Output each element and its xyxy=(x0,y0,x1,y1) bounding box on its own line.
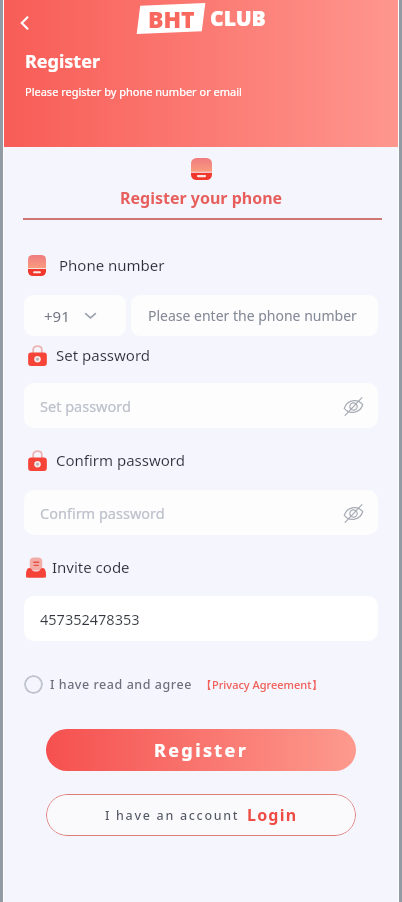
button[interactable]: Agree to terms xyxy=(24,675,43,694)
button[interactable]: +91 xyxy=(44,295,126,336)
staticText: Invite code xyxy=(52,557,130,577)
staticText: 【Privacy Agreement】 xyxy=(201,677,323,692)
button[interactable]: 457352478353 xyxy=(24,596,378,641)
staticText: 457352478353 xyxy=(40,609,140,629)
staticText: Confirm password xyxy=(56,450,185,470)
staticText: Set password xyxy=(40,396,131,416)
staticText: I have an account xyxy=(105,807,240,824)
button[interactable]: Show password xyxy=(340,393,366,419)
button[interactable]: Register xyxy=(46,729,356,771)
staticText: Login xyxy=(247,804,298,826)
staticText: CLUB xyxy=(210,4,266,33)
button[interactable]: Confirm password xyxy=(24,490,378,535)
button[interactable]: 【Privacy Agreement】 xyxy=(201,677,323,692)
button[interactable]: I have an account xyxy=(46,794,356,836)
button[interactable]: Show password xyxy=(340,500,366,526)
staticText: BHT xyxy=(148,3,195,34)
button[interactable]: Set password xyxy=(24,383,378,428)
staticText: Register your phone xyxy=(120,187,283,209)
staticText: Please enter the phone number xyxy=(148,306,357,325)
button[interactable]: Back xyxy=(8,6,42,40)
staticText: +91 xyxy=(44,306,70,326)
staticText: I have read and agree xyxy=(50,676,192,693)
button[interactable]: Please enter the phone number xyxy=(131,295,378,336)
staticText: Please register by phone number or email xyxy=(25,84,242,99)
staticText: Register xyxy=(25,49,100,74)
staticText: Confirm password xyxy=(40,503,165,523)
staticText: Phone number xyxy=(59,255,165,275)
staticText: Register xyxy=(154,738,249,763)
staticText: Set password xyxy=(56,345,151,365)
